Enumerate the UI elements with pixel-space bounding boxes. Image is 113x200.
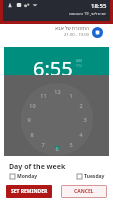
staticText: 11 (40, 92, 47, 99)
staticText: יום שלישי, 19 באוגוסט (69, 11, 107, 16)
button[interactable]: AM (76, 58, 83, 63)
button[interactable]: PM (76, 63, 83, 68)
staticText: 10 (29, 102, 36, 109)
staticText: 12 (54, 88, 61, 95)
button[interactable]: Tuesday (71, 172, 111, 181)
staticText: 18:55 (91, 2, 107, 10)
staticText: 5 (69, 141, 73, 148)
button[interactable]: SET REMINDER (6, 185, 52, 198)
staticText: 6:55 (33, 55, 73, 82)
staticText: 21:00 - 19:00 (64, 32, 89, 38)
staticText: 2 (79, 102, 83, 109)
staticText: התזכורת של אבא (55, 25, 89, 31)
staticText: 8 (30, 131, 34, 138)
button[interactable]: Notification app icon (92, 27, 103, 38)
staticText: SET REMINDER (11, 188, 48, 195)
staticText: 7 (41, 141, 45, 148)
staticText: 3 (83, 116, 87, 123)
staticText: 4 (79, 131, 83, 138)
staticText: 6 (55, 145, 59, 152)
button[interactable]: Monday (4, 172, 44, 181)
staticText: Day of the week (9, 162, 66, 172)
staticText: CANCEL (74, 188, 94, 195)
staticText: 9 (27, 116, 31, 123)
staticText: Tuesday (84, 173, 105, 180)
staticText: Monday (17, 173, 38, 180)
staticText: 1 (69, 92, 73, 99)
button[interactable]: CANCEL (61, 185, 107, 198)
